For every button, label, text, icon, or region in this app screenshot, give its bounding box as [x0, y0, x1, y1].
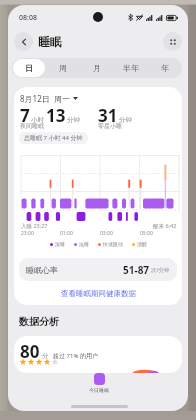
button[interactable]: 年 — [148, 58, 182, 78]
staticText: 睡眠心率 — [26, 265, 58, 275]
staticText: 醒来 6:42 — [153, 222, 177, 230]
staticText: 年 — [161, 63, 169, 73]
button[interactable]: 查看睡眠期间健康数据 — [14, 289, 182, 298]
button[interactable]: Back — [14, 32, 33, 51]
button[interactable]: 8月12日 周一 — [20, 93, 78, 104]
staticText: 总睡眠 7 小时 44 分钟 — [24, 134, 83, 142]
staticText: 今日睡眠 — [89, 387, 109, 393]
staticText: 小时 — [31, 116, 44, 124]
staticText: 03:00 — [100, 230, 140, 237]
button[interactable]: 周 — [46, 58, 80, 78]
button[interactable]: 半年 — [114, 58, 148, 78]
staticText: 08:08 — [19, 13, 37, 23]
staticText: 23:00 — [21, 230, 60, 237]
staticText: 周 — [59, 63, 67, 73]
staticText: 7 — [20, 104, 30, 127]
staticText: 05:00 — [140, 230, 180, 237]
button[interactable]: More options — [163, 32, 182, 51]
staticText: 80 — [20, 340, 40, 363]
staticText: 01:00 — [60, 230, 100, 237]
staticText: 夜间睡眠 — [20, 122, 44, 130]
staticText: 查看睡眠期间健康数据 — [61, 289, 136, 298]
button[interactable]: 睡眠心率 — [19, 258, 177, 281]
staticText: 分钟 — [119, 116, 132, 124]
staticText: 数据分析 — [19, 315, 59, 328]
staticText: 日 — [25, 63, 33, 73]
staticText: 浅睡 — [79, 241, 89, 247]
staticText: 快速眼动 — [103, 241, 123, 247]
staticText: 次/分钟 — [151, 266, 170, 274]
staticText: 深睡 — [55, 241, 65, 247]
staticText: 零星小睡 — [98, 122, 122, 130]
button[interactable]: 月 — [80, 58, 114, 78]
staticText: 51-87 — [123, 263, 150, 277]
staticText: 睡眠 — [38, 34, 62, 49]
button[interactable]: 日 — [13, 59, 45, 77]
staticText: 分 — [42, 352, 49, 360]
staticText: 8月12日 周一 — [20, 93, 70, 104]
staticText: 入睡 23:27 — [21, 222, 48, 230]
staticText: 31 — [98, 104, 118, 127]
button[interactable]: 今日睡眠 — [89, 373, 109, 393]
staticText: 半年 — [123, 63, 139, 73]
staticText: 超过 71% 的用户 — [53, 352, 98, 360]
staticText: 分钟 — [67, 116, 80, 124]
staticText: 月 — [93, 63, 101, 73]
staticText: 清醒 — [137, 241, 147, 247]
staticText: 13 — [46, 104, 66, 127]
